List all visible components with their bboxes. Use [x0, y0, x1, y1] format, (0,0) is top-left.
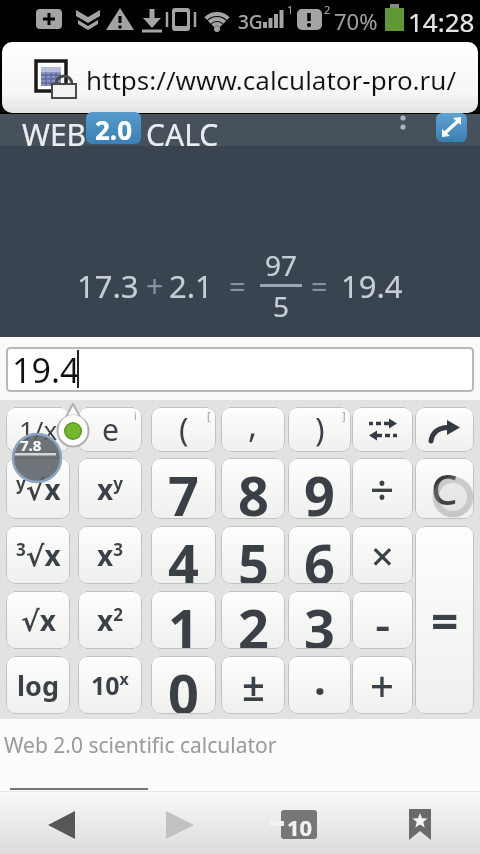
button[interactable]: 4: [151, 526, 216, 584]
staticText: 1: [168, 591, 199, 649]
staticText: -: [375, 591, 391, 649]
button[interactable]: 8: [221, 458, 285, 519]
button[interactable]: [270, 797, 350, 849]
button[interactable]: [30, 797, 110, 849]
staticText: 19.4: [341, 265, 403, 307]
button[interactable]: xy: [78, 458, 142, 519]
button[interactable]: 7: [151, 458, 216, 519]
button[interactable]: [436, 113, 467, 142]
staticText: 2.0: [95, 112, 133, 144]
staticText: 19.4: [12, 347, 80, 392]
staticText: 97: [265, 246, 298, 284]
staticText: ±: [242, 658, 265, 712]
button[interactable]: -: [352, 591, 413, 649]
button[interactable]: log: [6, 656, 70, 714]
button[interactable]: 19.4: [6, 347, 474, 392]
button[interactable]: x2: [78, 591, 142, 649]
button[interactable]: 0: [151, 656, 216, 714]
staticText: 8: [238, 458, 269, 519]
button[interactable]: [390, 797, 460, 849]
button[interactable]: =: [415, 526, 474, 714]
button[interactable]: 10x: [78, 656, 142, 714]
staticText: xy: [97, 470, 123, 508]
staticText: ]: [342, 408, 346, 423]
button[interactable]: 1: [151, 591, 216, 649]
staticText: ÷: [370, 460, 395, 517]
button[interactable]: ×: [352, 526, 413, 584]
button[interactable]: (: [151, 407, 216, 452]
staticText: 2: [324, 2, 331, 17]
button[interactable]: e: [78, 407, 142, 452]
button[interactable]: 2: [221, 591, 285, 649]
staticText: ×: [371, 528, 394, 582]
staticText: 4: [168, 526, 199, 584]
button[interactable]: x3: [78, 526, 142, 584]
staticText: (: [179, 408, 189, 452]
staticText: ,: [248, 407, 258, 447]
staticText: +: [370, 657, 395, 714]
staticText: 0: [168, 656, 199, 714]
staticText: x3: [97, 536, 123, 574]
staticText: 1/x: [19, 412, 58, 447]
staticText: WEB: [22, 114, 87, 146]
staticText: 14:28: [408, 4, 475, 39]
button[interactable]: 1/x: [6, 407, 70, 452]
button[interactable]: 9: [288, 458, 351, 519]
staticText: 3: [304, 591, 335, 649]
staticText: 3G: [238, 9, 263, 35]
staticText: 10: [287, 812, 313, 842]
button[interactable]: 3√x: [6, 526, 70, 584]
staticText: i: [134, 408, 137, 423]
staticText: 5: [273, 287, 290, 325]
staticText: Web 2.0 scientific calculator: [4, 731, 277, 760]
button[interactable]: 6: [288, 526, 351, 584]
staticText: 1: [287, 2, 294, 17]
button[interactable]: ,: [221, 407, 285, 452]
button[interactable]: 3: [288, 591, 351, 649]
button[interactable]: ): [288, 407, 351, 452]
button[interactable]: [415, 407, 474, 452]
button[interactable]: ÷: [352, 458, 413, 519]
staticText: .: [314, 656, 326, 707]
staticText: 2: [238, 591, 269, 649]
staticText: https://www.calculator-pro.ru/: [86, 62, 457, 97]
button[interactable]: ±: [221, 656, 285, 714]
staticText: +: [146, 265, 164, 306]
staticText: ): [315, 408, 325, 452]
staticText: 2.1: [169, 265, 213, 307]
staticText: √x: [21, 601, 56, 639]
staticText: 9: [304, 458, 335, 519]
button[interactable]: [352, 407, 413, 452]
staticText: C: [431, 460, 458, 517]
staticText: 10x: [91, 668, 129, 702]
staticText: =: [311, 266, 328, 305]
button[interactable]: 2.0: [86, 112, 141, 144]
button[interactable]: [150, 797, 230, 849]
button[interactable]: .: [288, 656, 351, 714]
button[interactable]: √x: [6, 591, 70, 649]
staticText: [: [207, 408, 211, 423]
staticText: e: [102, 409, 119, 450]
staticText: =: [229, 266, 246, 305]
staticText: log: [17, 667, 59, 704]
staticText: 17.3: [77, 265, 139, 307]
staticText: y√x: [16, 470, 61, 508]
staticText: 3√x: [16, 536, 61, 574]
staticText: 70%: [334, 6, 378, 36]
staticText: CALC: [146, 114, 219, 146]
staticText: 7.8: [20, 435, 42, 455]
staticText: x2: [97, 601, 123, 639]
button[interactable]: C: [415, 458, 474, 519]
staticText: 5: [238, 526, 269, 584]
staticText: =: [431, 588, 459, 653]
staticText: 7: [168, 458, 199, 519]
button[interactable]: 5: [221, 526, 285, 584]
button[interactable]: [2, 42, 478, 113]
button[interactable]: y√x: [6, 458, 70, 519]
button[interactable]: +: [352, 656, 413, 714]
staticText: 6: [304, 526, 335, 584]
